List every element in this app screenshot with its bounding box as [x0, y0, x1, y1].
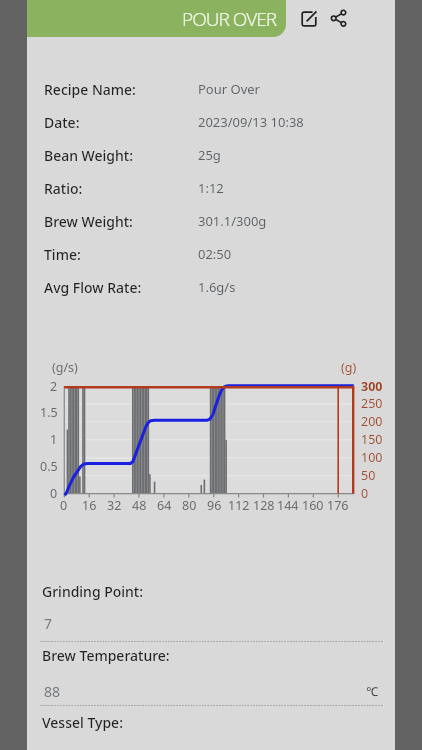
staticText: 16: [82, 497, 97, 514]
staticText: 2: [50, 378, 58, 395]
staticText: 0: [361, 485, 369, 502]
staticText: 2023/09/13 10:38: [198, 113, 304, 131]
staticText: 1.6g/s: [198, 278, 236, 296]
staticText: Avg Flow Rate:: [44, 278, 198, 297]
staticText: 80: [182, 497, 197, 514]
staticText: Recipe Name:: [44, 80, 198, 99]
staticText: 100: [361, 449, 383, 466]
staticText: ℃: [366, 683, 378, 699]
staticText: Bean Weight:: [44, 146, 198, 165]
staticText: 301.1/300g: [198, 212, 267, 230]
button[interactable]: Share: [322, 2, 356, 36]
staticText: Grinding Point:: [42, 582, 144, 601]
staticText: (g): [341, 359, 357, 376]
button[interactable]: Edit: [292, 2, 326, 36]
staticText: 160: [302, 497, 324, 514]
staticText: Vessel Type:: [42, 713, 123, 732]
staticText: POUR OVER: [182, 6, 277, 32]
staticText: 112: [228, 497, 250, 514]
staticText: 150: [361, 431, 383, 448]
staticText: 0.5: [40, 458, 58, 475]
staticText: 0: [50, 485, 58, 502]
staticText: 200: [361, 413, 383, 430]
staticText: Brew Weight:: [44, 212, 198, 231]
staticText: 1:12: [198, 179, 224, 197]
staticText: Date:: [44, 113, 198, 132]
staticText: 176: [327, 497, 349, 514]
staticText: 1: [50, 431, 58, 448]
staticText: 48: [132, 497, 147, 514]
staticText: (g/s): [52, 359, 78, 376]
staticText: 0: [60, 497, 68, 514]
staticText: 250: [361, 395, 383, 412]
staticText: 144: [277, 497, 299, 514]
staticText: 88: [44, 682, 61, 701]
staticText: Ratio:: [44, 179, 198, 198]
button[interactable]: POUR OVER: [27, 0, 286, 37]
staticText: 64: [157, 497, 172, 514]
staticText: 96: [207, 497, 222, 514]
staticText: 50: [361, 467, 376, 484]
staticText: 1.5: [40, 404, 58, 421]
staticText: 300: [361, 378, 383, 395]
staticText: Time:: [44, 245, 198, 264]
staticText: Pour Over: [198, 80, 260, 98]
staticText: 7: [44, 614, 53, 633]
staticText: 128: [253, 497, 275, 514]
staticText: 25g: [198, 146, 221, 164]
staticText: 02:50: [198, 245, 232, 263]
staticText: 32: [107, 497, 122, 514]
staticText: Brew Temperature:: [42, 646, 170, 665]
